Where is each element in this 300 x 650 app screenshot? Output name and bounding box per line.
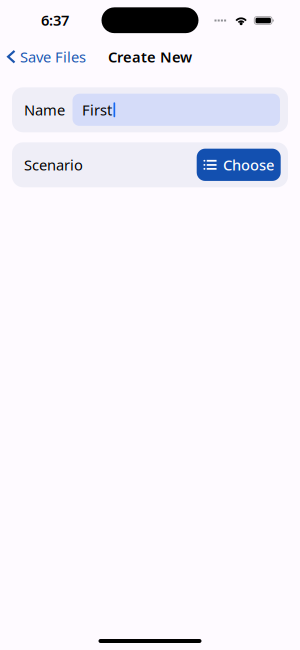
- staticText: Scenario: [24, 155, 83, 175]
- button[interactable]: Save Files: [0, 43, 92, 70]
- staticText: Create New: [108, 47, 192, 66]
- button[interactable]: Choose: [197, 149, 281, 181]
- staticText: Name: [24, 100, 65, 120]
- staticText: Choose: [223, 155, 274, 175]
- staticText: 6:37: [41, 10, 69, 30]
- staticText: First: [82, 100, 112, 120]
- staticText: Save Files: [20, 47, 86, 66]
